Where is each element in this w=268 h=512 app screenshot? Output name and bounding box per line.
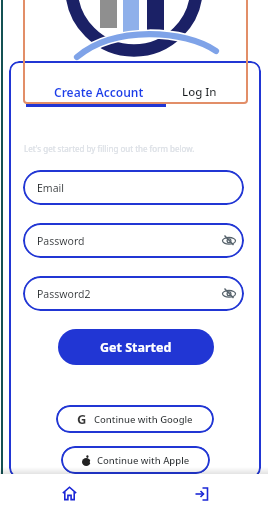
staticText: Create Account [54,84,144,100]
button[interactable]: G [56,405,214,433]
staticText: Get Started [100,339,172,356]
staticText: Continue with Apple [97,454,190,467]
button[interactable]: Password [23,223,244,258]
button[interactable]: Continue with Apple [61,446,210,474]
staticText: Password2 [37,287,91,301]
staticText: Password [37,234,85,248]
staticText: Log In [182,84,217,100]
button[interactable] [53,477,85,509]
staticText: Let's get started by filling out the for… [24,143,195,154]
staticText: G [77,410,87,428]
staticText: Email [37,181,64,195]
staticText: Continue with Google [94,413,193,426]
button[interactable]: Email [23,170,244,205]
button[interactable] [186,478,218,510]
button[interactable]: Create Account [29,77,169,107]
button[interactable]: Password2 [23,276,244,311]
button[interactable]: Log In [166,77,232,107]
button[interactable]: Get Started [58,329,214,365]
